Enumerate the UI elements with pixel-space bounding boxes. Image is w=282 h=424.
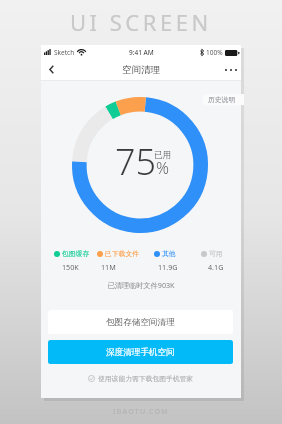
- staticText: IBAOTU.COM: [113, 407, 170, 417]
- staticText: 75: [115, 137, 157, 186]
- staticText: 深度清理手机空间: [106, 347, 175, 358]
- staticText: %: [156, 157, 169, 179]
- staticText: UI SCREEN: [70, 7, 212, 37]
- staticText: Sketch: [54, 48, 75, 57]
- button[interactable]: 历史说明: [202, 94, 244, 105]
- staticText: 空间清理: [122, 64, 160, 76]
- staticText: 使用该能力需下载包图手机管家: [98, 374, 194, 383]
- staticText: 其他: [162, 249, 176, 258]
- button[interactable]: 包图存储空间清理: [48, 310, 233, 334]
- staticText: 100%: [206, 48, 223, 57]
- staticText: 4.1G: [208, 262, 224, 272]
- staticText: 11M: [101, 262, 116, 272]
- staticText: 包图缓存: [62, 249, 90, 258]
- staticText: 已用: [154, 150, 172, 161]
- button[interactable]: Back: [41, 59, 62, 80]
- button[interactable]: 深度清理手机空间: [48, 340, 233, 364]
- staticText: 9:41 AM: [129, 48, 154, 57]
- button[interactable]: 已下载文件: [97, 249, 139, 258]
- staticText: 可用: [209, 249, 223, 258]
- button[interactable]: 可用: [201, 249, 223, 258]
- staticText: 包图存储空间清理: [106, 317, 175, 328]
- staticText: 已清理临时文件903K: [41, 280, 241, 290]
- staticText: 已下载文件: [105, 249, 139, 258]
- staticText: 150K: [62, 262, 79, 272]
- button[interactable]: 其他: [154, 249, 176, 258]
- button[interactable]: 包图缓存: [54, 249, 90, 258]
- staticText: 历史说明: [208, 95, 236, 104]
- staticText: 11.9G: [158, 262, 178, 272]
- button[interactable]: More options: [220, 59, 241, 80]
